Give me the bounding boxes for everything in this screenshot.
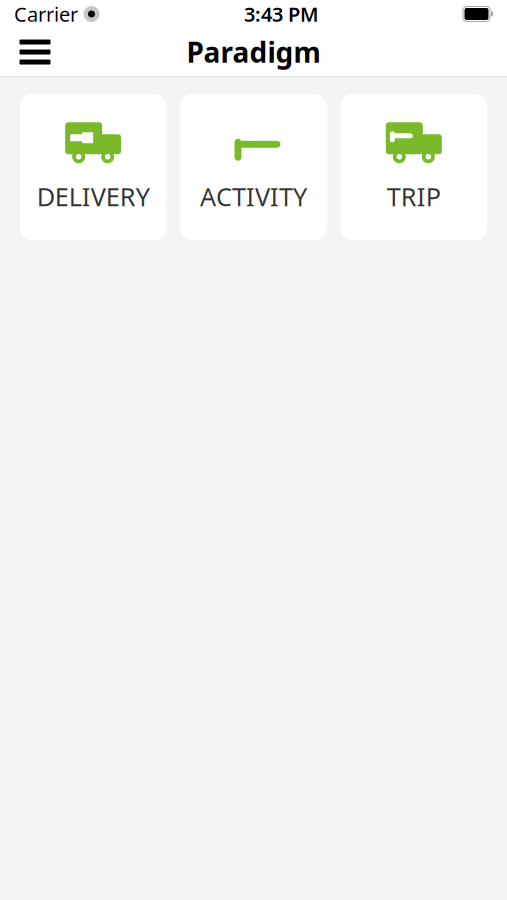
staticText: Paradigm: [186, 33, 320, 71]
button[interactable]: DELIVERY: [20, 94, 166, 240]
staticText: DELIVERY: [37, 180, 150, 213]
staticText: 3:43 PM: [244, 1, 319, 27]
staticText: TRIP: [387, 180, 441, 213]
button[interactable]: Menu: [8, 29, 62, 75]
staticText: Carrier: [14, 1, 78, 27]
button[interactable]: TRIP: [341, 94, 487, 240]
staticText: ACTIVITY: [200, 180, 307, 213]
button[interactable]: ACTIVITY: [180, 94, 327, 240]
